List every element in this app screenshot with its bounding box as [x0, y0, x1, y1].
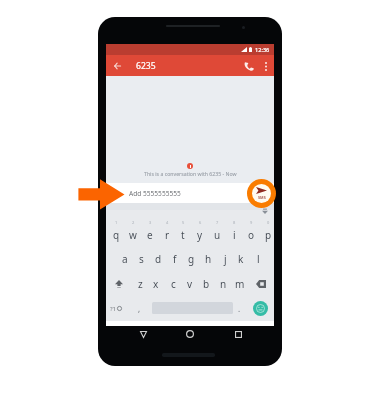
button[interactable]: i: [226, 226, 242, 244]
button[interactable]: Backspace: [253, 275, 269, 293]
staticText: 3: [149, 220, 152, 225]
button[interactable]: Hide keyboard: [259, 205, 270, 216]
button[interactable]: b: [198, 275, 214, 293]
staticText: v: [187, 277, 193, 291]
staticText: c: [171, 277, 176, 291]
staticText: p: [265, 228, 272, 242]
button[interactable]: y: [192, 226, 208, 244]
button[interactable]: t: [175, 226, 191, 244]
button[interactable]: c: [165, 275, 181, 293]
button[interactable]: w: [125, 226, 141, 244]
staticText: m: [235, 277, 245, 291]
staticText: e: [147, 228, 153, 242]
button[interactable]: More options: [258, 58, 274, 74]
button[interactable]: q: [108, 226, 124, 244]
staticText: z: [138, 277, 143, 291]
button[interactable]: Send SMS: [247, 179, 276, 208]
button[interactable]: j: [217, 250, 233, 268]
staticText: h: [205, 252, 212, 266]
staticText: This is a conversation with 6235 - Now: [144, 170, 237, 177]
button[interactable]: Call: [241, 58, 257, 74]
staticText: b: [203, 277, 210, 291]
staticText: r: [165, 228, 170, 242]
button[interactable]: o: [243, 226, 259, 244]
staticText: j: [224, 252, 227, 266]
button[interactable]: Back: [137, 328, 149, 340]
staticText: 2: [132, 220, 135, 225]
staticText: Add 5555555555: [129, 189, 181, 198]
button[interactable]: r: [159, 226, 175, 244]
button[interactable]: s: [133, 250, 149, 268]
staticText: 1: [115, 220, 118, 225]
button[interactable]: p: [260, 226, 276, 244]
staticText: 7: [216, 220, 219, 225]
button[interactable]: f: [167, 250, 183, 268]
button[interactable]: x: [148, 275, 164, 293]
staticText: s: [139, 252, 144, 266]
button[interactable]: h: [200, 250, 216, 268]
staticText: u: [214, 228, 221, 242]
button[interactable]: g: [183, 250, 199, 268]
staticText: w: [129, 228, 137, 242]
staticText: 0: [267, 220, 270, 225]
button[interactable]: m: [232, 275, 248, 293]
staticText: k: [238, 252, 244, 266]
staticText: l: [257, 252, 260, 266]
staticText: 5: [182, 220, 185, 225]
button[interactable]: Back: [109, 58, 125, 74]
staticText: 12:36: [255, 46, 270, 54]
staticText: y: [197, 228, 203, 242]
staticText: x: [153, 277, 159, 291]
button[interactable]: k: [233, 250, 249, 268]
button[interactable]: Add 5555555555: [106, 183, 274, 204]
button[interactable]: Recents: [232, 328, 244, 340]
staticText: o: [248, 228, 255, 242]
staticText: .: [238, 303, 241, 314]
button[interactable]: Shift: [111, 275, 127, 293]
button[interactable]: Symbols: [110, 301, 128, 316]
button[interactable]: d: [150, 250, 166, 268]
staticText: 6: [199, 220, 202, 225]
staticText: d: [155, 252, 162, 266]
staticText: g: [188, 252, 195, 266]
button[interactable]: a: [117, 250, 133, 268]
staticText: a: [122, 252, 128, 266]
staticText: q: [113, 228, 120, 242]
staticText: SMS: [258, 195, 266, 200]
button[interactable]: n: [215, 275, 231, 293]
button[interactable]: z: [132, 275, 148, 293]
staticText: t: [181, 228, 185, 242]
button[interactable]: l: [250, 250, 266, 268]
staticText: n: [220, 277, 227, 291]
button[interactable]: Home: [184, 328, 196, 340]
staticText: ?1: [110, 305, 117, 313]
staticText: i: [233, 228, 236, 242]
staticText: f: [173, 252, 177, 266]
staticText: 4: [166, 220, 169, 225]
button[interactable]: Emoji: [253, 301, 268, 316]
staticText: 8: [233, 220, 236, 225]
staticText: ,: [138, 303, 141, 314]
button[interactable]: v: [182, 275, 198, 293]
staticText: 6235: [136, 60, 156, 72]
staticText: 9: [250, 220, 253, 225]
button[interactable]: u: [209, 226, 225, 244]
button[interactable]: e: [142, 226, 158, 244]
